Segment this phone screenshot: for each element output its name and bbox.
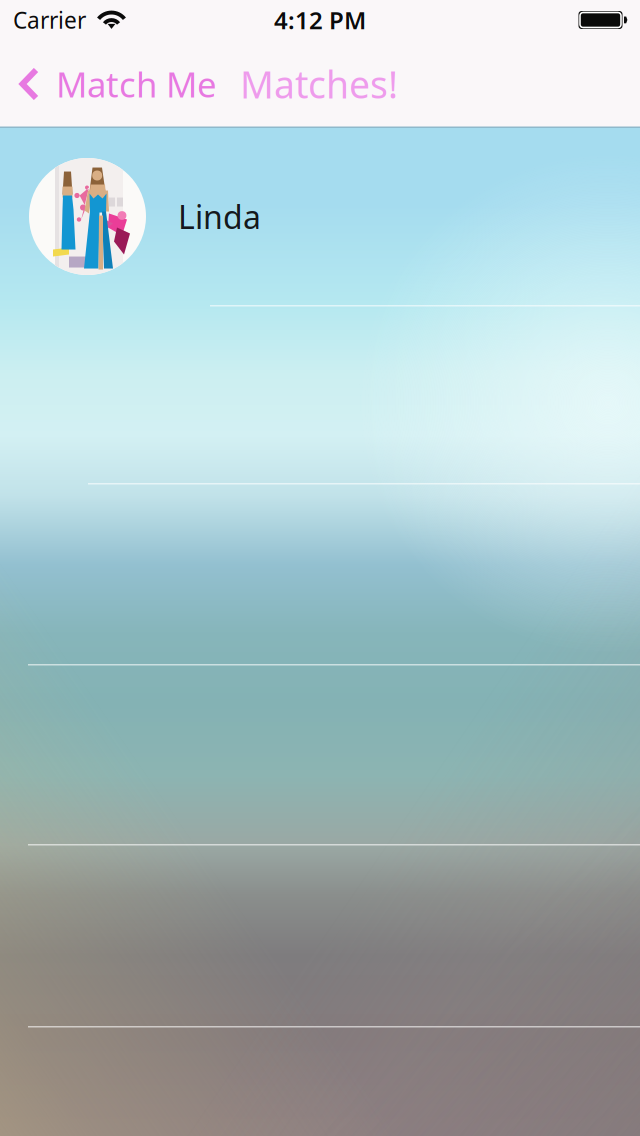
staticText: 4:12 PM (274, 4, 366, 36)
staticText: Matches! (240, 59, 398, 109)
button[interactable]: Linda (0, 128, 640, 306)
staticText: Linda (178, 195, 261, 238)
button[interactable]: Match Me (0, 40, 225, 128)
staticText: Match Me (56, 61, 217, 107)
staticText: Carrier (13, 5, 86, 35)
